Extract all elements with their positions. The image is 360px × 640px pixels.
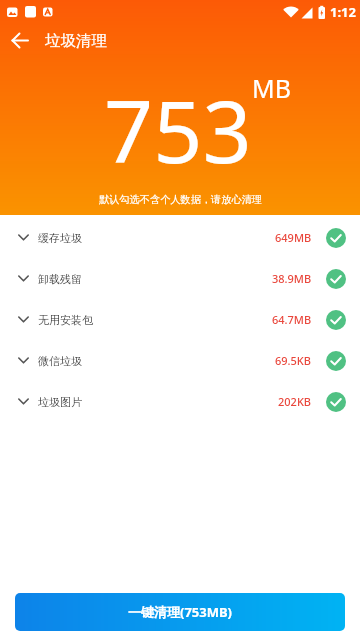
staticText: 753 <box>104 71 252 188</box>
staticText: 64.7MB <box>272 312 312 327</box>
button[interactable] <box>0 24 40 57</box>
staticText: 202KB <box>278 394 312 409</box>
button[interactable]: 无用安装包 <box>0 299 360 340</box>
staticText: 无用安装包 <box>38 313 93 327</box>
button[interactable]: 微信垃圾 <box>0 340 360 381</box>
staticText: 缓存垃圾 <box>38 231 82 245</box>
staticText: 卸载残留 <box>38 272 82 286</box>
staticText: 38.9MB <box>272 271 312 286</box>
button[interactable]: 垃圾图片 <box>0 381 360 422</box>
button[interactable]: 一键清理(753MB) <box>15 593 345 631</box>
staticText: 1:12 <box>330 3 356 21</box>
staticText: 649MB <box>275 230 312 245</box>
staticText: MB <box>252 71 291 105</box>
staticText: 69.5KB <box>275 353 312 368</box>
button[interactable]: 卸载残留 <box>0 258 360 299</box>
staticText: 默认勾选不含个人数据，请放心清理 <box>99 193 262 206</box>
staticText: 垃圾图片 <box>38 395 82 409</box>
staticText: 微信垃圾 <box>38 354 82 368</box>
staticText: 垃圾清理 <box>45 31 107 51</box>
staticText: 一键清理(753MB) <box>128 603 233 621</box>
button[interactable]: 缓存垃圾 <box>0 217 360 258</box>
